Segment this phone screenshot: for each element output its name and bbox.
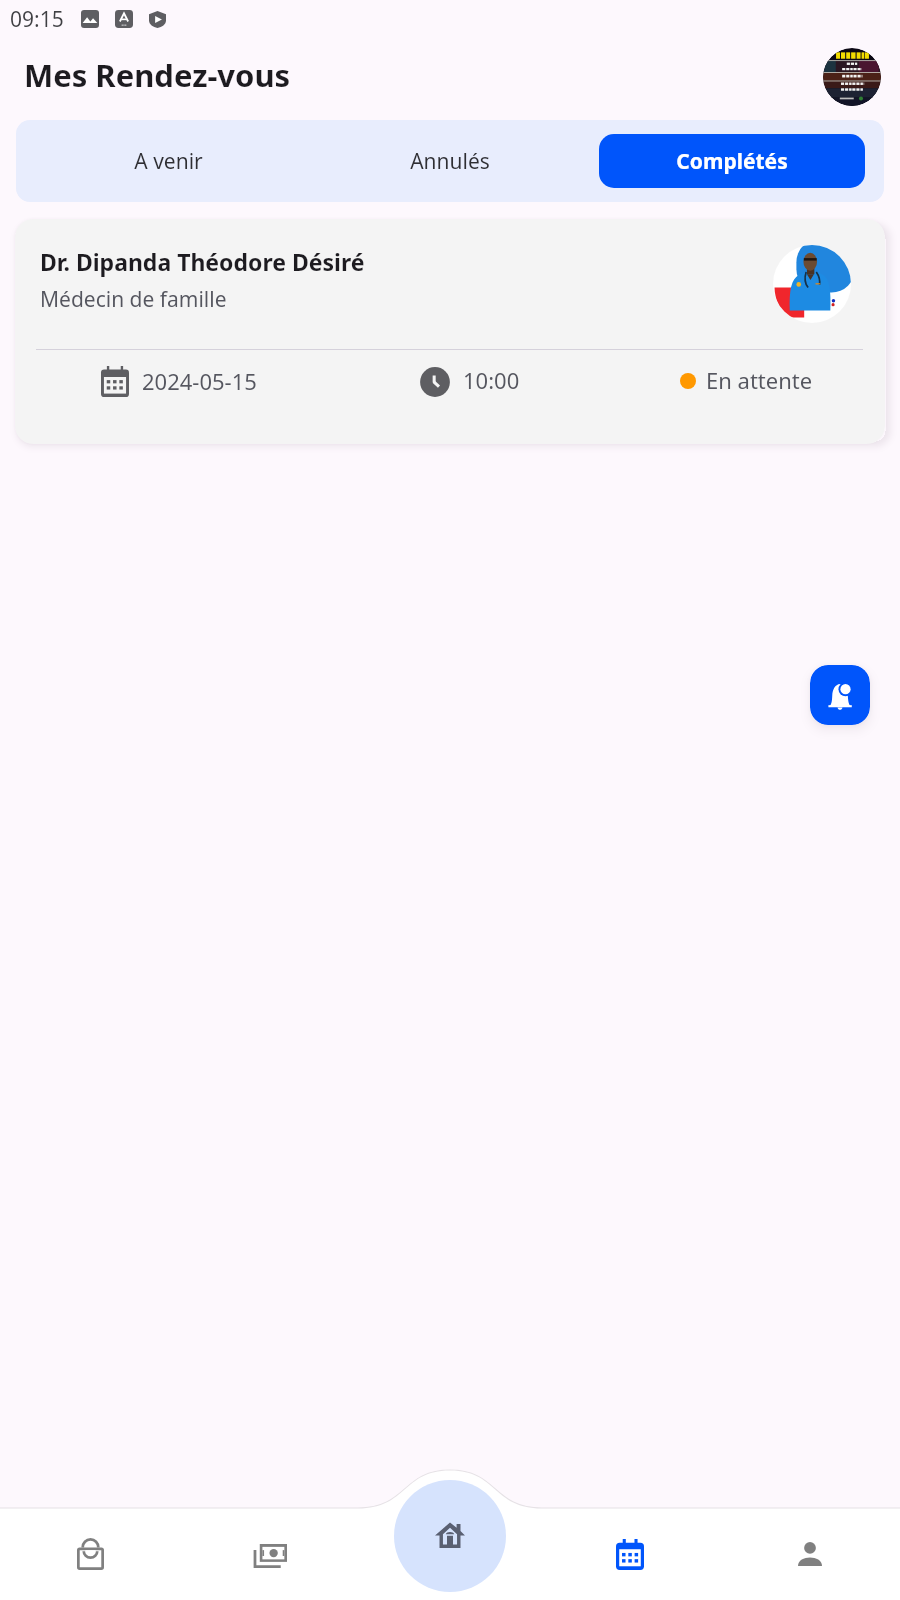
button[interactable]: Appointments: [540, 1508, 720, 1600]
staticText: 09:15: [10, 5, 64, 34]
button[interactable]: Annulés: [317, 134, 583, 188]
button[interactable]: Shop: [0, 1508, 180, 1600]
staticText: Mes Rendez-vous: [24, 54, 291, 96]
staticText: 2024-05-15: [142, 366, 257, 396]
staticText: Complétés: [676, 147, 788, 176]
staticText: A venir: [134, 147, 203, 176]
button[interactable]: A venir: [35, 134, 301, 188]
button[interactable]: Complétés: [599, 134, 865, 188]
staticText: Annulés: [410, 147, 490, 176]
staticText: Médecin de famille: [40, 285, 227, 314]
button[interactable]: Home: [394, 1480, 506, 1592]
button[interactable]: Dr. Dipanda Théodore Désiré: [15, 219, 885, 444]
button[interactable]: Profile: [823, 48, 881, 106]
button[interactable]: Profile: [720, 1508, 900, 1600]
button[interactable]: Payments: [180, 1508, 360, 1600]
staticText: En attente: [706, 365, 813, 395]
staticText: 10:00: [463, 365, 520, 395]
button[interactable]: Notifications: [810, 665, 870, 725]
staticText: Dr. Dipanda Théodore Désiré: [40, 246, 365, 277]
